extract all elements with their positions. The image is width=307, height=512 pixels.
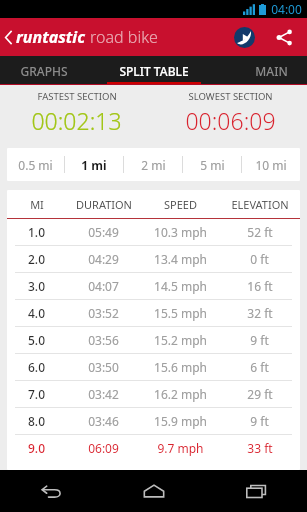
staticText: 33 ft: [247, 440, 273, 456]
button[interactable]: 5.0: [7, 327, 300, 353]
staticText: 8.0: [28, 413, 45, 429]
staticText: 15.5 mph: [154, 305, 207, 321]
staticText: 6 ft: [250, 359, 269, 375]
staticText: 0 ft: [250, 251, 269, 267]
staticText: 1 mi: [81, 157, 107, 173]
staticText: 2.0: [28, 251, 45, 267]
staticText: 04:29: [88, 251, 119, 267]
staticText: 03:50: [88, 359, 119, 375]
button[interactable]: 1.0: [7, 219, 300, 245]
staticText: 16 ft: [247, 278, 273, 294]
staticText: 00:06:09: [185, 105, 276, 136]
staticText: 5.0: [28, 332, 45, 348]
staticText: SPLIT TABLE: [119, 63, 189, 79]
staticText: 10 mi: [255, 157, 287, 173]
staticText: 03:56: [88, 332, 119, 348]
staticText: 00:02:13: [31, 105, 122, 136]
button[interactable]: 0.5 mi: [7, 148, 64, 181]
staticText: MI: [30, 197, 44, 212]
staticText: 0.5 mi: [18, 157, 53, 173]
staticText: runtastic: [16, 26, 85, 48]
button[interactable]: SPLIT TABLE: [94, 56, 214, 85]
staticText: 14.5 mph: [154, 278, 207, 294]
staticText: 03:42: [88, 386, 119, 402]
button[interactable]: 7.0: [7, 381, 300, 407]
staticText: 05:49: [88, 224, 119, 240]
staticText: 15.9 mph: [154, 413, 207, 429]
staticText: 6.0: [28, 359, 45, 375]
button[interactable]: 2.0: [7, 246, 300, 272]
button[interactable]: 9.0: [7, 435, 300, 461]
button[interactable]: 1 mi: [65, 148, 123, 181]
staticText: 10.3 mph: [154, 224, 207, 240]
staticText: 1.0: [28, 224, 45, 240]
staticText: 9.0: [28, 440, 45, 456]
staticText: 9 ft: [250, 413, 269, 429]
staticText: SLOWEST SECTION: [188, 90, 273, 103]
staticText: 15.2 mph: [154, 332, 207, 348]
button[interactable]: Recent apps: [205, 470, 307, 512]
button[interactable]: 2 mi: [124, 148, 182, 181]
staticText: 7.0: [28, 386, 45, 402]
staticText: MAIN: [255, 63, 288, 79]
staticText: 4.0: [28, 305, 45, 321]
button[interactable]: MAIN: [235, 56, 307, 85]
button[interactable]: 4.0: [7, 300, 300, 326]
staticText: 9.7 mph: [157, 440, 204, 456]
button[interactable]: Share: [267, 20, 301, 54]
staticText: road bike: [90, 26, 158, 48]
button[interactable]: Runtastic app: [227, 20, 261, 54]
staticText: 13.4 mph: [154, 251, 207, 267]
button[interactable]: Back: [0, 470, 103, 512]
staticText: 03:46: [88, 413, 119, 429]
button[interactable]: 6.0: [7, 354, 300, 380]
staticText: 52 ft: [247, 224, 273, 240]
staticText: 15.6 mph: [154, 359, 207, 375]
button[interactable]: 10 mi: [242, 148, 300, 181]
staticText: 29 ft: [247, 386, 273, 402]
button[interactable]: runtastic: [0, 22, 164, 52]
staticText: GRAPHS: [20, 63, 68, 79]
staticText: DURATION: [76, 197, 132, 212]
staticText: 06:09: [88, 440, 119, 456]
button[interactable]: Home: [103, 470, 205, 512]
staticText: 04:00: [271, 1, 302, 17]
staticText: 5 mi: [200, 157, 225, 173]
staticText: 2 mi: [141, 157, 166, 173]
staticText: ELEVATION: [231, 197, 289, 212]
staticText: SPEED: [164, 197, 197, 212]
button[interactable]: GRAPHS: [0, 56, 88, 85]
staticText: 3.0: [28, 278, 45, 294]
staticText: FASTEST SECTION: [37, 90, 117, 103]
button[interactable]: 3.0: [7, 273, 300, 299]
button[interactable]: 5 mi: [183, 148, 241, 181]
staticText: 04:07: [88, 278, 119, 294]
button[interactable]: 8.0: [7, 408, 300, 434]
staticText: 03:52: [88, 305, 119, 321]
staticText: 16.2 mph: [154, 386, 207, 402]
staticText: 9 ft: [250, 332, 269, 348]
staticText: 32 ft: [247, 305, 273, 321]
